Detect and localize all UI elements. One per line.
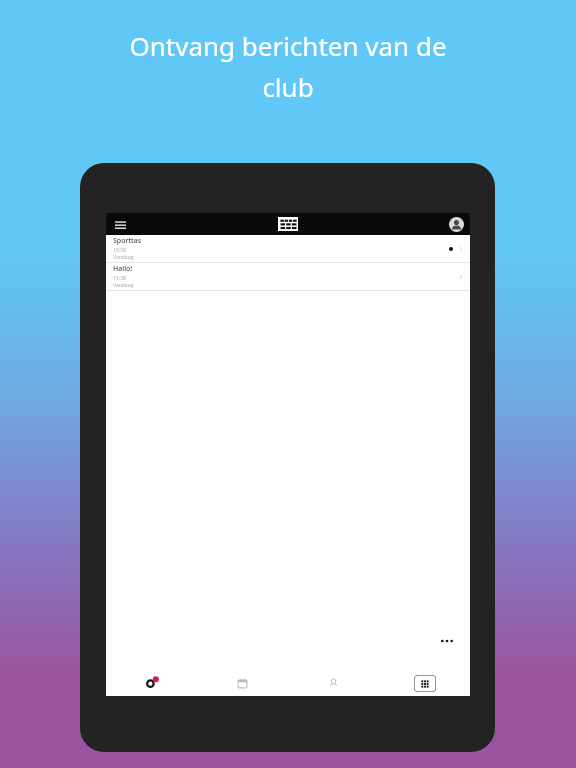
button[interactable]: Hallo! bbox=[106, 263, 470, 291]
button[interactable]: Messages bbox=[106, 670, 197, 696]
staticText: Hallo! bbox=[113, 264, 133, 274]
staticText: 15:38 bbox=[113, 275, 126, 282]
button[interactable]: Profile bbox=[447, 215, 465, 233]
button[interactable]: Profile bbox=[288, 670, 379, 696]
button[interactable]: More options bbox=[432, 626, 462, 656]
staticText: 15:38 bbox=[113, 247, 126, 254]
button[interactable]: Sporttas bbox=[106, 235, 470, 263]
button[interactable]: Menu bbox=[110, 214, 130, 234]
staticText: Ontvang berichten van de bbox=[129, 28, 447, 63]
staticText: Vandaag bbox=[113, 282, 134, 289]
staticText: Sporttas bbox=[113, 236, 142, 246]
button[interactable]: Dashboard bbox=[379, 670, 470, 696]
staticText: club bbox=[262, 69, 314, 104]
button[interactable]: Calendar bbox=[197, 670, 288, 696]
staticText: Vandaag bbox=[113, 254, 134, 261]
